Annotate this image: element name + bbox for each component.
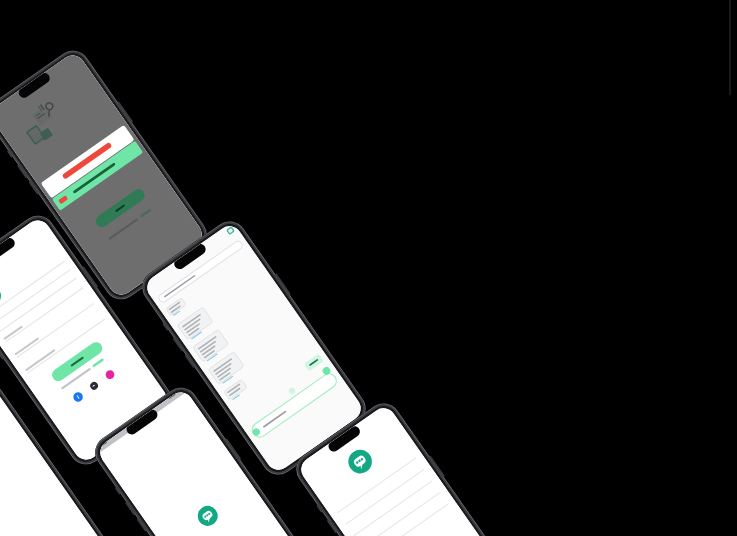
- button[interactable]: Login screen: [0, 0, 737, 536]
- button[interactable]: App screen: [0, 0, 737, 536]
- button[interactable]: Register screen: [0, 0, 737, 536]
- button[interactable]: Conversation screen: [0, 0, 737, 536]
- button[interactable]: Splash screen: [0, 0, 737, 536]
- button[interactable]: Warning dialog screen: [0, 0, 737, 536]
